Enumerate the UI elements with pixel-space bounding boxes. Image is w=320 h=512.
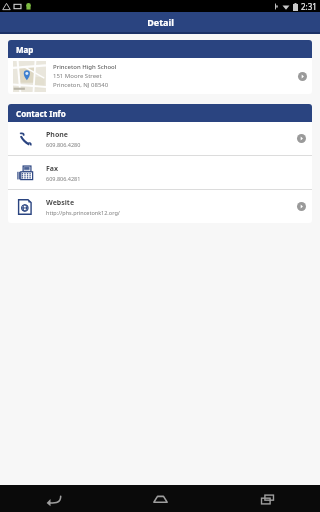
other: Open (297, 202, 306, 211)
staticText: Princeton, NJ 08540 (53, 81, 109, 89)
staticText: Detail (147, 16, 174, 28)
staticText: Princeton High School (53, 63, 117, 71)
button[interactable]: Back (38, 488, 68, 510)
staticText: Contact Info (16, 108, 66, 119)
button[interactable]: Princeton High School (8, 58, 312, 94)
staticText: 2:31 (301, 1, 317, 12)
staticText: Phone (46, 130, 69, 140)
staticText: http://phs.princetonk12.org/ (46, 209, 120, 216)
staticText: 609.806.4281 (46, 175, 81, 182)
staticText: Map (16, 44, 34, 55)
other: Open (298, 72, 307, 81)
staticText: Fax (46, 164, 59, 174)
button[interactable]: Recent apps (252, 488, 282, 510)
staticText: Website (46, 198, 75, 208)
staticText: 609.806.4280 (46, 141, 81, 148)
other: Open (297, 134, 306, 143)
staticText: 151 Moore Street (53, 72, 102, 80)
button[interactable]: Fax (8, 156, 312, 189)
button[interactable]: Website (8, 190, 312, 223)
button[interactable]: Phone (8, 122, 312, 155)
button[interactable]: Home (145, 488, 175, 510)
